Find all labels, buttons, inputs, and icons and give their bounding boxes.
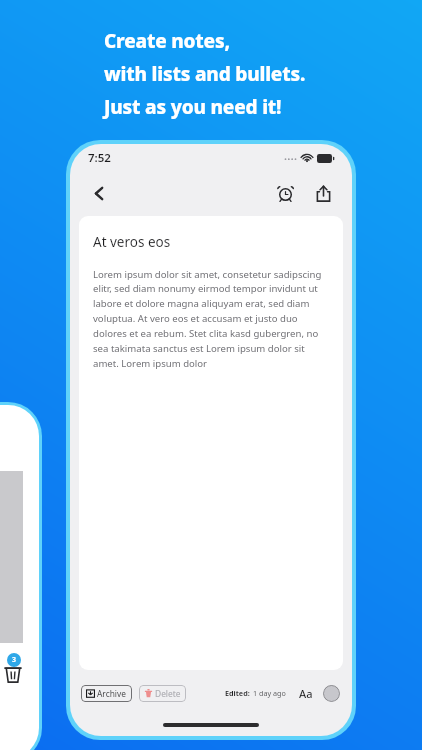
- staticText: Delete: [155, 688, 181, 699]
- staticText: 7:52: [88, 150, 111, 166]
- staticText: Edited:: [225, 688, 250, 698]
- staticText: Just as you need it!: [104, 94, 282, 120]
- staticText: with lists and bullets.: [104, 61, 306, 87]
- button[interactable]: Text size: [296, 682, 316, 704]
- button[interactable]: Delete: [139, 685, 186, 702]
- button[interactable]: Share: [308, 178, 338, 208]
- button[interactable]: At veros eos: [79, 216, 343, 670]
- staticText: At veros eos: [93, 233, 171, 251]
- button[interactable]: Archive: [81, 685, 132, 702]
- staticText: Lorem ipsum dolor sit amet, consetetur s…: [93, 268, 329, 370]
- button[interactable]: Set reminder: [270, 178, 300, 208]
- staticText: 3: [12, 655, 17, 665]
- button[interactable]: Note color: [323, 685, 340, 702]
- staticText: Aa: [299, 686, 313, 701]
- staticText: Archive: [97, 688, 127, 699]
- staticText: Create notes,: [104, 28, 230, 54]
- button[interactable]: Back: [84, 178, 114, 208]
- staticText: 1 day ago: [253, 688, 286, 698]
